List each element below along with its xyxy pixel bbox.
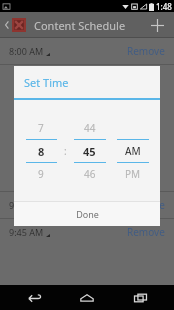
button[interactable]: 9 — [22, 163, 60, 185]
staticText: 46 — [84, 167, 96, 181]
staticText: 9:30 AM — [9, 199, 44, 211]
button[interactable]: 45 — [70, 140, 109, 162]
staticText: 45 — [83, 144, 96, 159]
button[interactable]: 8:00 AM — [0, 38, 174, 64]
staticText: PM — [125, 167, 141, 181]
staticText: Remove — [127, 198, 165, 212]
staticText: 8:00 AM — [9, 45, 44, 57]
staticText: Remove — [127, 44, 165, 58]
button[interactable]: 7 — [22, 117, 60, 139]
staticText: AM — [125, 144, 141, 158]
button[interactable]: Add — [144, 12, 170, 38]
button[interactable]: 9:45 AM — [0, 219, 174, 245]
staticText: Set Time — [24, 75, 69, 90]
staticText: Content Schedule — [34, 18, 126, 33]
staticText: 9 — [38, 167, 44, 181]
staticText: : — [64, 144, 67, 158]
button[interactable]: Navigate up — [3, 12, 28, 38]
button[interactable]: AM — [113, 140, 152, 162]
button[interactable]: 46 — [70, 163, 109, 185]
staticText: 1:48 — [156, 1, 172, 12]
staticText: 9:45 AM — [9, 226, 44, 238]
staticText: Remove — [127, 225, 165, 239]
button[interactable]: 8 — [22, 140, 60, 162]
staticText: 8 — [38, 144, 45, 159]
button[interactable]: Home — [69, 285, 105, 310]
staticText: 44 — [84, 121, 96, 135]
button[interactable]: Done — [14, 202, 160, 226]
button[interactable]: 44 — [70, 117, 109, 139]
staticText: 7 — [38, 121, 44, 135]
button[interactable]: Back — [17, 285, 53, 310]
button[interactable]: Recent apps — [122, 285, 158, 310]
button[interactable]: 9:30 AM — [0, 192, 174, 218]
button[interactable]: PM — [113, 163, 152, 185]
staticText: Done — [76, 208, 99, 220]
